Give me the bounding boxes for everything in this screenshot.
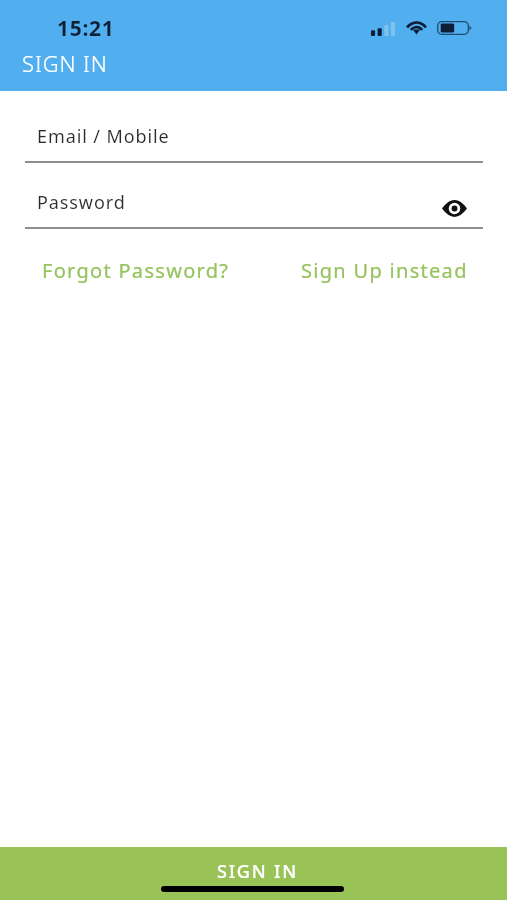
button[interactable]: Forgot Password? (23, 252, 211, 279)
button[interactable]: SIGN IN (0, 847, 507, 900)
staticText: SIGN IN (22, 48, 108, 78)
staticText: 15:21 (57, 14, 115, 43)
staticText: Sign Up instead (301, 257, 468, 284)
staticText: Forgot Password? (42, 257, 230, 284)
button[interactable]: Sign Up instead (283, 252, 450, 279)
button[interactable]: Email / Mobile (25, 115, 483, 163)
staticText: Email / Mobile (37, 124, 170, 149)
staticText: Password (37, 190, 126, 215)
button[interactable]: Password (25, 181, 483, 229)
staticText: SIGN IN (217, 859, 298, 884)
button[interactable]: Show password (436, 190, 472, 226)
